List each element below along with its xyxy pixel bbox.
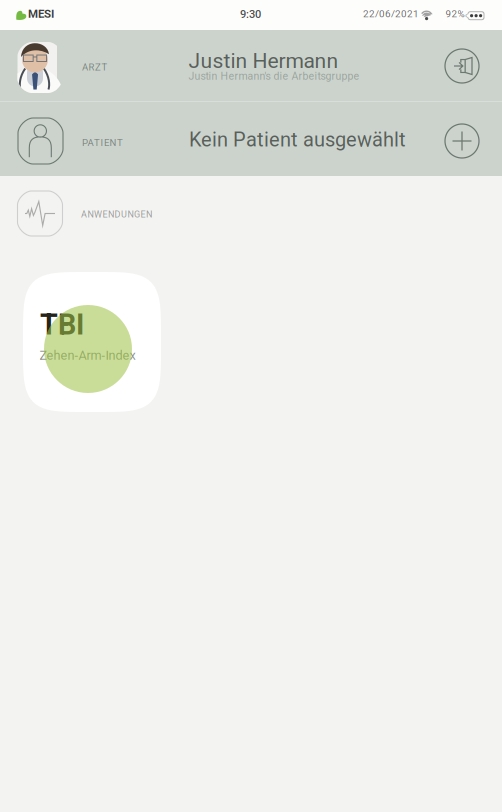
button[interactable]: Patient hinzufügen [445, 124, 479, 158]
staticText: ARZT [82, 61, 110, 73]
button[interactable]: TBI [23, 272, 161, 412]
staticText: Justin Hermann [188, 48, 338, 73]
staticText: Justin Hermann's die Arbeitsgruppe [188, 70, 359, 82]
staticText: PATIENT [82, 137, 125, 148]
staticText: ANWENDUNGEN [81, 209, 154, 220]
staticText: Zehen-Arm-Index [39, 348, 135, 363]
staticText: 9:30 [240, 8, 261, 21]
staticText: 22/06/2021 [363, 8, 419, 20]
staticText: Kein Patient ausgewählt [189, 128, 406, 151]
staticText: 92% [446, 8, 465, 20]
staticText: TBI [40, 308, 84, 342]
button[interactable]: Abmelden [445, 49, 479, 83]
staticText: MESI [28, 7, 54, 21]
